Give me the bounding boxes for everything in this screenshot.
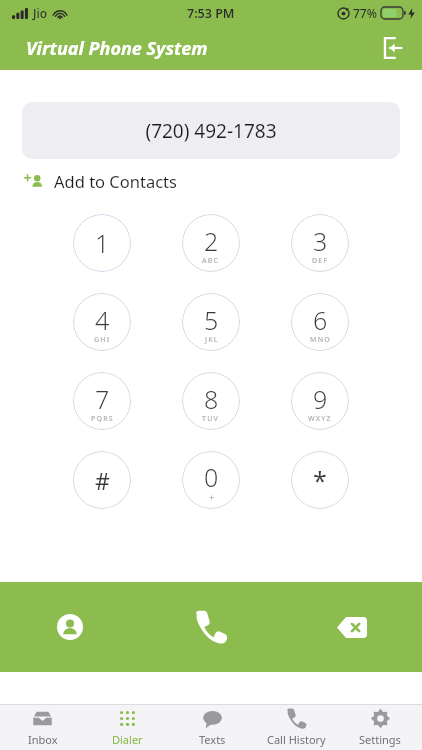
button[interactable]: 1 bbox=[73, 214, 131, 272]
staticText: GHI bbox=[94, 335, 111, 345]
staticText: Call History bbox=[267, 732, 326, 747]
button[interactable]: Texts bbox=[170, 705, 254, 750]
staticText: * bbox=[313, 463, 327, 497]
button[interactable]: Call History bbox=[254, 705, 338, 750]
button[interactable]: Backspace bbox=[281, 582, 422, 672]
button[interactable]: Dialer bbox=[85, 705, 170, 750]
button[interactable]: 2 bbox=[182, 214, 240, 272]
button[interactable]: Contacts bbox=[0, 582, 140, 672]
staticText: 4 bbox=[95, 303, 110, 337]
button[interactable]: Call bbox=[140, 582, 281, 672]
button[interactable]: 0 bbox=[182, 451, 240, 509]
staticText: ABC bbox=[202, 256, 220, 266]
button[interactable]: 8 bbox=[182, 372, 240, 430]
staticText: Add to Contacts bbox=[54, 170, 177, 192]
staticText: (720) 492-1783 bbox=[145, 118, 277, 144]
staticText: DEF bbox=[312, 256, 329, 266]
button[interactable]: Add to Contacts bbox=[24, 170, 177, 192]
button[interactable]: Settings bbox=[338, 705, 422, 750]
button[interactable]: # bbox=[73, 451, 131, 509]
staticText: TUV bbox=[202, 414, 220, 424]
staticText: Inbox bbox=[28, 732, 58, 747]
staticText: 77% bbox=[353, 5, 377, 21]
staticText: 3 bbox=[313, 224, 328, 258]
staticText: 5 bbox=[204, 303, 219, 337]
button[interactable]: * bbox=[291, 451, 349, 509]
staticText: Virtual Phone System bbox=[26, 36, 208, 61]
button[interactable]: 5 bbox=[182, 293, 240, 351]
button[interactable]: (720) 492-1783 bbox=[22, 102, 400, 159]
staticText: 8 bbox=[204, 382, 219, 416]
staticText: 9 bbox=[313, 382, 328, 416]
staticText: Jio bbox=[33, 5, 48, 21]
staticText: 2 bbox=[204, 224, 219, 258]
staticText: 1 bbox=[95, 226, 110, 260]
staticText: Dialer bbox=[112, 732, 143, 747]
button[interactable]: 4 bbox=[73, 293, 131, 351]
staticText: 0 bbox=[204, 460, 219, 494]
button[interactable]: Log out bbox=[374, 30, 410, 66]
button[interactable]: 7 bbox=[73, 372, 131, 430]
staticText: 6 bbox=[313, 303, 328, 337]
staticText: 7 bbox=[95, 382, 110, 416]
staticText: # bbox=[95, 465, 110, 496]
button[interactable]: Inbox bbox=[0, 705, 85, 750]
button[interactable]: 3 bbox=[291, 214, 349, 272]
staticText: JKL bbox=[205, 335, 219, 345]
staticText: MNO bbox=[310, 335, 331, 345]
staticText: PQRS bbox=[91, 414, 114, 424]
button[interactable]: 9 bbox=[291, 372, 349, 430]
button[interactable]: 6 bbox=[291, 293, 349, 351]
staticText: WXYZ bbox=[308, 414, 332, 424]
staticText: 7:53 PM bbox=[187, 5, 235, 22]
staticText: + bbox=[209, 491, 215, 503]
staticText: Texts bbox=[199, 732, 226, 747]
staticText: Settings bbox=[359, 732, 401, 747]
